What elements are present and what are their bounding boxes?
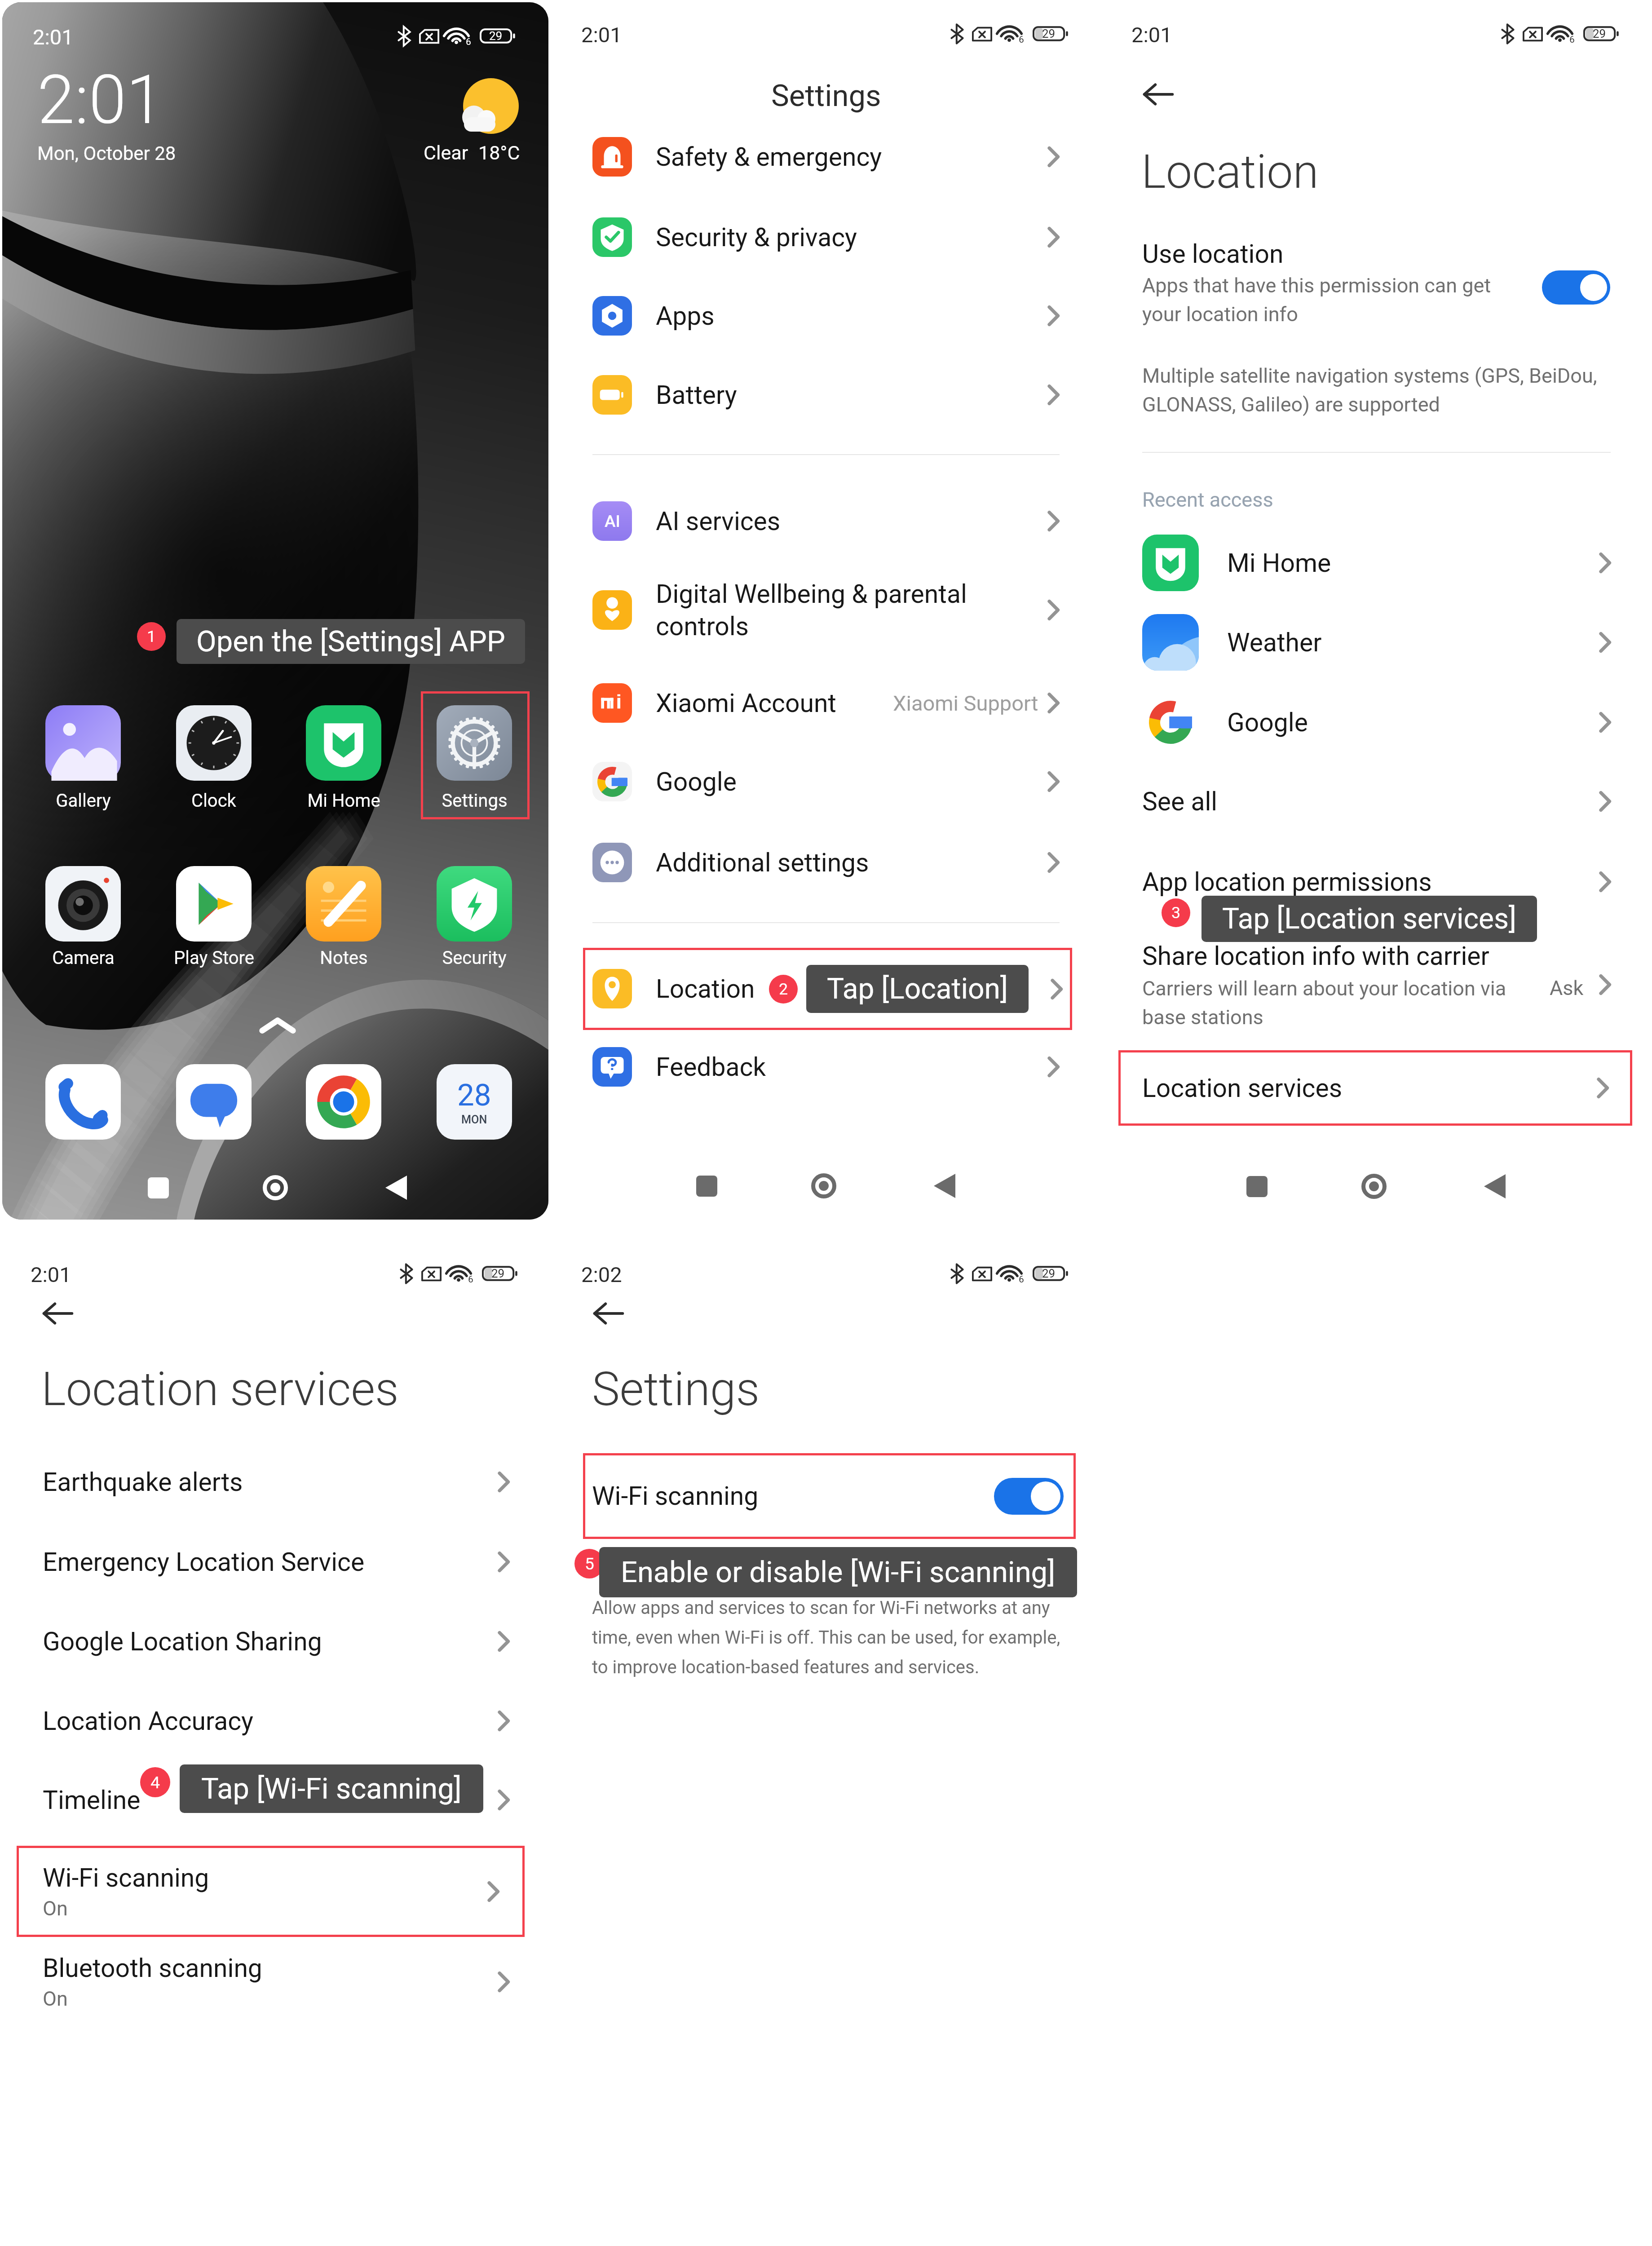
button[interactable]: Recents [127,1161,190,1215]
staticText: Mon, October 28 [37,142,176,164]
button[interactable]: Security [437,866,512,942]
button[interactable]: Back [586,1291,631,1336]
staticText: Camera [52,947,115,968]
button[interactable]: Settings [437,705,512,781]
button[interactable]: Digital Wellbeing & parental controls [551,570,1101,650]
button[interactable]: Recents [1225,1159,1288,1213]
staticText: 29 [491,1267,505,1280]
staticText: Additional settings [656,848,869,878]
staticText: AI [605,512,620,531]
staticText: Google [656,767,737,797]
button[interactable]: Home [1343,1159,1405,1213]
button[interactable]: Timeline [0,1760,551,1839]
button[interactable]: App [437,1064,512,1140]
button[interactable]: Camera [45,866,121,942]
button[interactable]: Additional settings [551,823,1101,902]
button[interactable]: Back [365,1161,428,1215]
button[interactable]: App [45,1064,121,1140]
button[interactable]: App [176,1064,252,1140]
staticText: Share location info with carrier [1142,941,1489,971]
button[interactable]: Back [1463,1159,1526,1213]
staticText: Open the [Settings] APP [196,624,505,659]
staticText: 1 [147,627,156,646]
staticText: Gallery [56,790,111,811]
button[interactable]: Back [1136,72,1181,117]
staticText: 18°C [478,141,520,164]
staticText: 6 [1019,34,1024,45]
staticText: Multiple satellite navigation systems (G… [1142,364,1597,416]
button[interactable]: Mi Home [1101,523,1652,602]
staticText: Battery [656,380,737,410]
button[interactable]: Back [913,1159,976,1213]
staticText: 28 [457,1078,491,1113]
button[interactable]: Safety & emergency [551,117,1101,196]
staticText: Xiaomi Support [893,691,1038,716]
staticText: AI services [656,506,781,536]
button[interactable]: Use location [1142,239,1611,333]
staticText: Emergency Location Service [43,1547,365,1577]
button[interactable]: Location Accuracy [0,1681,551,1760]
button[interactable]: Emergency Location Service [0,1522,551,1601]
button[interactable]: Weather [1101,603,1652,682]
staticText: Location [656,974,755,1004]
button[interactable]: Recents [675,1159,738,1213]
button[interactable]: Earthquake alerts [0,1442,551,1521]
button[interactable]: Toggle [1542,270,1610,305]
button[interactable]: Wi-Fi scanning [583,1453,1076,1539]
staticText: Location services [41,1362,399,1417]
button[interactable]: Apps [551,276,1101,355]
button[interactable]: Location services [1118,1050,1632,1126]
button[interactable]: Xiaomi Account [551,663,1101,743]
button[interactable]: Wi-Fi scanning [17,1846,525,1937]
button[interactable]: Share location info with carrier [1101,941,1652,1035]
button[interactable]: Security & privacy [551,198,1101,277]
button[interactable]: See all [1101,770,1652,833]
staticText: 2:01 [31,1262,71,1287]
button[interactable]: Home [244,1161,307,1215]
staticText: Location [1141,145,1319,199]
staticText: Wi-Fi scanning [43,1863,209,1893]
button[interactable]: Notes [306,866,381,942]
staticText: 6 [1019,1274,1024,1285]
staticText: Tap [Wi-Fi scanning] [201,1772,462,1806]
button[interactable]: Battery [551,355,1101,434]
staticText: Allow apps and services to scan for Wi-F… [592,1597,1060,1678]
staticText: On [43,1897,68,1920]
button[interactable]: Clock [176,705,252,781]
button[interactable]: Gallery [45,705,121,781]
button[interactable]: Back [35,1291,80,1336]
button[interactable]: Google Location Sharing [0,1602,551,1681]
staticText: Security [442,947,507,968]
staticText: 4 [150,1773,160,1792]
button[interactable]: Feedback [551,1027,1101,1106]
staticText: Tap [Location services] [1222,902,1516,936]
button[interactable]: AI [551,482,1101,561]
button[interactable]: App [306,1064,381,1140]
staticText: App location permissions [1142,867,1432,897]
button[interactable]: Play Store [176,866,252,942]
staticText: 2 [779,980,788,999]
staticText: Use location [1142,239,1284,269]
button[interactable]: Mi Home [306,705,381,781]
button[interactable]: Google [551,742,1101,821]
button[interactable]: Home [792,1159,855,1213]
button[interactable]: Bluetooth scanning [0,1937,551,2027]
staticText: Settings [442,790,508,811]
staticText: 2:01 [581,22,622,47]
staticText: 29 [1042,27,1056,40]
staticText: See all [1142,787,1218,817]
staticText: Apps that have this permission can get y… [1142,274,1491,326]
button[interactable]: Location [583,948,1072,1030]
staticText: 5 [585,1554,594,1574]
staticText: Digital Wellbeing & parental controls [656,579,1011,641]
staticText: Settings [771,78,881,114]
staticText: 29 [1042,1267,1056,1280]
staticText: 2:01 [1131,22,1172,47]
staticText: 3 [1171,903,1181,922]
staticText: 2:01 [37,61,164,140]
button[interactable]: Google [1101,683,1652,762]
staticText: Enable or disable [Wi-Fi scanning] [621,1555,1056,1589]
button[interactable]: App location permissions [1101,855,1652,909]
button[interactable]: Toggle [994,1478,1064,1515]
staticText: Mi Home [1227,548,1331,578]
